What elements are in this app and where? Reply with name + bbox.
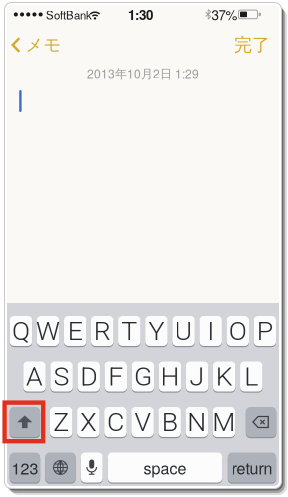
staticText: space [143, 456, 186, 479]
staticText: 37% [211, 5, 237, 24]
button[interactable]: Shift [10, 407, 40, 438]
button[interactable]: W [37, 316, 59, 347]
staticText: SoftBank [46, 7, 92, 23]
staticText: 123 [11, 456, 38, 479]
button[interactable]: E [64, 316, 86, 347]
staticText: M [212, 406, 235, 438]
staticText: return [231, 456, 272, 479]
button[interactable]: Z [50, 407, 72, 438]
button[interactable]: メモ [11, 34, 61, 56]
staticText: Q [12, 315, 30, 347]
button[interactable]: G [132, 361, 154, 393]
button[interactable]: R [91, 316, 113, 347]
button[interactable]: H [159, 361, 181, 393]
button[interactable]: P [254, 316, 276, 347]
button[interactable]: Dictate [81, 452, 103, 484]
button[interactable]: D [77, 361, 100, 393]
button[interactable]: Y [145, 316, 168, 347]
button[interactable]: I [199, 316, 222, 347]
button[interactable]: L [240, 361, 263, 393]
button[interactable]: N [185, 407, 208, 438]
button[interactable]: T [118, 316, 141, 347]
button[interactable]: A [23, 361, 46, 393]
staticText: H [160, 361, 179, 392]
button[interactable]: M [213, 407, 235, 438]
staticText: W [36, 315, 60, 347]
staticText: メモ [25, 34, 61, 56]
button[interactable]: Q [10, 316, 32, 347]
staticText: B [162, 406, 178, 438]
staticText: E [68, 315, 83, 347]
staticText: N [187, 406, 206, 438]
button[interactable]: S [50, 361, 73, 393]
button[interactable]: B [158, 407, 181, 438]
staticText: K [216, 361, 233, 392]
button[interactable]: X [77, 407, 100, 438]
staticText: V [135, 406, 151, 438]
staticText: P [257, 315, 273, 347]
button[interactable]: F [105, 361, 127, 393]
button[interactable]: C [104, 407, 127, 438]
button[interactable]: K [213, 361, 235, 393]
staticText: Y [148, 315, 164, 347]
staticText: D [80, 361, 97, 392]
staticText: X [80, 406, 96, 438]
button[interactable]: O [226, 316, 249, 347]
staticText: T [121, 315, 137, 347]
staticText: O [229, 315, 247, 347]
staticText: Z [53, 406, 69, 438]
staticText: G [134, 361, 152, 392]
button[interactable]: Delete [246, 407, 276, 438]
staticText: 完了 [234, 34, 270, 56]
button[interactable]: 完了 [234, 34, 270, 56]
staticText: F [108, 361, 123, 392]
staticText: 1:30 [128, 5, 153, 24]
button[interactable]: 123 [10, 452, 40, 484]
staticText: I [207, 315, 214, 347]
button[interactable]: U [172, 316, 195, 347]
button[interactable]: Next keyboard [45, 452, 76, 484]
staticText: R [94, 315, 111, 347]
staticText: 2013年10月2日 1:29 [87, 65, 199, 82]
staticText: J [190, 361, 205, 392]
staticText: S [54, 361, 70, 392]
button[interactable]: space [108, 452, 222, 484]
staticText: A [26, 361, 43, 392]
staticText: L [244, 361, 258, 392]
button[interactable]: J [186, 361, 208, 393]
staticText: C [107, 406, 124, 438]
staticText: U [175, 315, 193, 347]
button[interactable]: V [131, 407, 154, 438]
button[interactable]: return [228, 452, 276, 484]
